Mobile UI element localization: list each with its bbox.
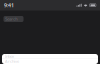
staticText: Archive [5, 58, 19, 64]
button[interactable]: Archive [2, 59, 98, 63]
staticText: Inbox [5, 54, 14, 59]
button[interactable]: Inbox [2, 54, 98, 59]
staticText: Search [5, 16, 17, 22]
button[interactable]: Search [3, 16, 23, 22]
staticText: 9:41 [4, 2, 14, 9]
